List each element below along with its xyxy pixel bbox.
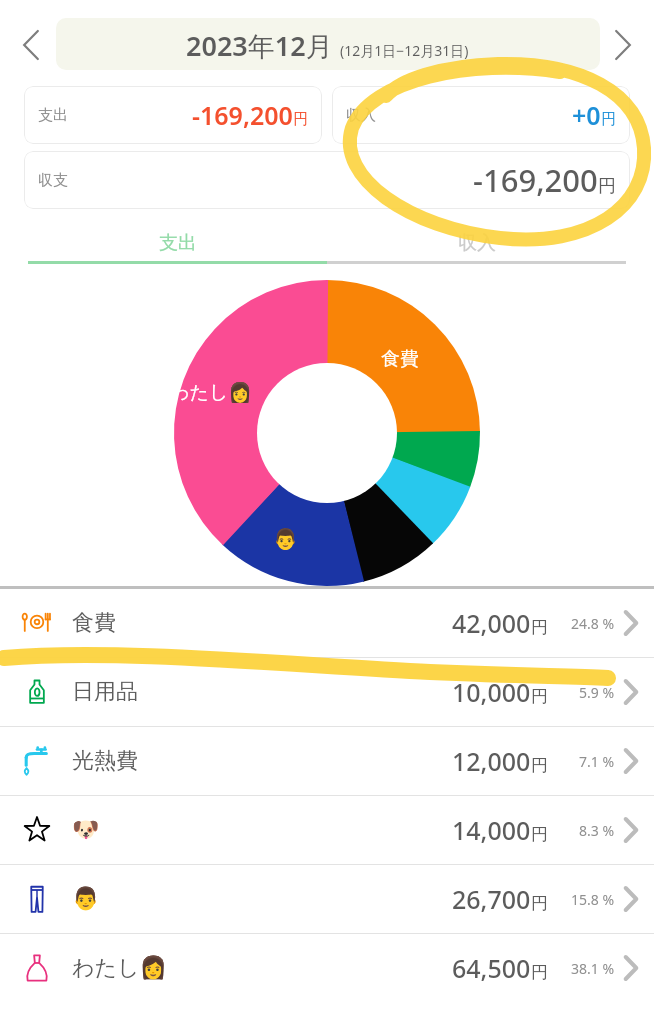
staticText: わたし👩 bbox=[170, 381, 252, 405]
button[interactable]: 支出 bbox=[24, 86, 322, 144]
staticText: 38.1 % bbox=[571, 959, 615, 978]
staticText: 収入 bbox=[346, 106, 376, 125]
staticText: 15.8 % bbox=[571, 890, 615, 909]
button[interactable]: 👨 bbox=[0, 865, 654, 933]
staticText: 5.9 % bbox=[579, 683, 615, 702]
staticText: 光熱費 bbox=[72, 747, 138, 775]
staticText: 食費 bbox=[381, 347, 419, 371]
staticText: 64,500 bbox=[452, 951, 531, 985]
staticText: 円 bbox=[531, 824, 548, 845]
staticText: 円 bbox=[598, 175, 616, 198]
staticText: 食費 bbox=[72, 609, 116, 637]
staticText: 12,000 bbox=[452, 744, 531, 778]
staticText: 円 bbox=[531, 686, 548, 707]
staticText: 円 bbox=[601, 110, 616, 129]
staticText: 収支 bbox=[38, 171, 68, 190]
button[interactable]: Previous month bbox=[8, 22, 54, 68]
staticText: 収入 bbox=[458, 231, 496, 255]
staticText: 🐶 bbox=[72, 817, 100, 843]
staticText: -169,200 bbox=[473, 159, 598, 201]
button[interactable]: 🐶 bbox=[0, 796, 654, 864]
button[interactable]: 日用品 bbox=[0, 658, 654, 726]
staticText: 日用品 bbox=[72, 678, 138, 706]
button[interactable]: わたし👩 bbox=[0, 934, 654, 1002]
staticText: 円 bbox=[531, 617, 548, 638]
staticText: 2023年12月 bbox=[186, 27, 333, 64]
button[interactable]: 収入 bbox=[332, 86, 630, 144]
staticText: 26,700 bbox=[452, 882, 531, 916]
staticText: 14,000 bbox=[452, 813, 531, 847]
staticText: 支出 bbox=[38, 106, 68, 125]
staticText: (12月1日−12月31日) bbox=[340, 41, 469, 60]
staticText: 円 bbox=[293, 110, 308, 129]
staticText: 支出 bbox=[159, 231, 197, 255]
staticText: +0 bbox=[572, 98, 601, 132]
button[interactable]: 食費 bbox=[0, 589, 654, 657]
staticText: 円 bbox=[531, 893, 548, 914]
button[interactable]: Next month bbox=[600, 22, 646, 68]
button[interactable]: 光熱費 bbox=[0, 727, 654, 795]
staticText: 円 bbox=[531, 962, 548, 983]
staticText: 8.3 % bbox=[579, 821, 615, 840]
staticText: 42,000 bbox=[452, 606, 531, 640]
staticText: 円 bbox=[531, 755, 548, 776]
staticText: 10,000 bbox=[452, 675, 531, 709]
button[interactable]: 収入 bbox=[327, 225, 626, 261]
staticText: 7.1 % bbox=[579, 752, 615, 771]
staticText: 👨 bbox=[72, 886, 100, 912]
button[interactable]: 収支 bbox=[24, 151, 630, 209]
staticText: 24.8 % bbox=[571, 614, 615, 633]
staticText: 👨 bbox=[273, 527, 298, 550]
staticText: -169,200 bbox=[192, 98, 293, 132]
staticText: わたし👩 bbox=[72, 954, 167, 982]
button[interactable]: 支出 bbox=[28, 225, 327, 261]
